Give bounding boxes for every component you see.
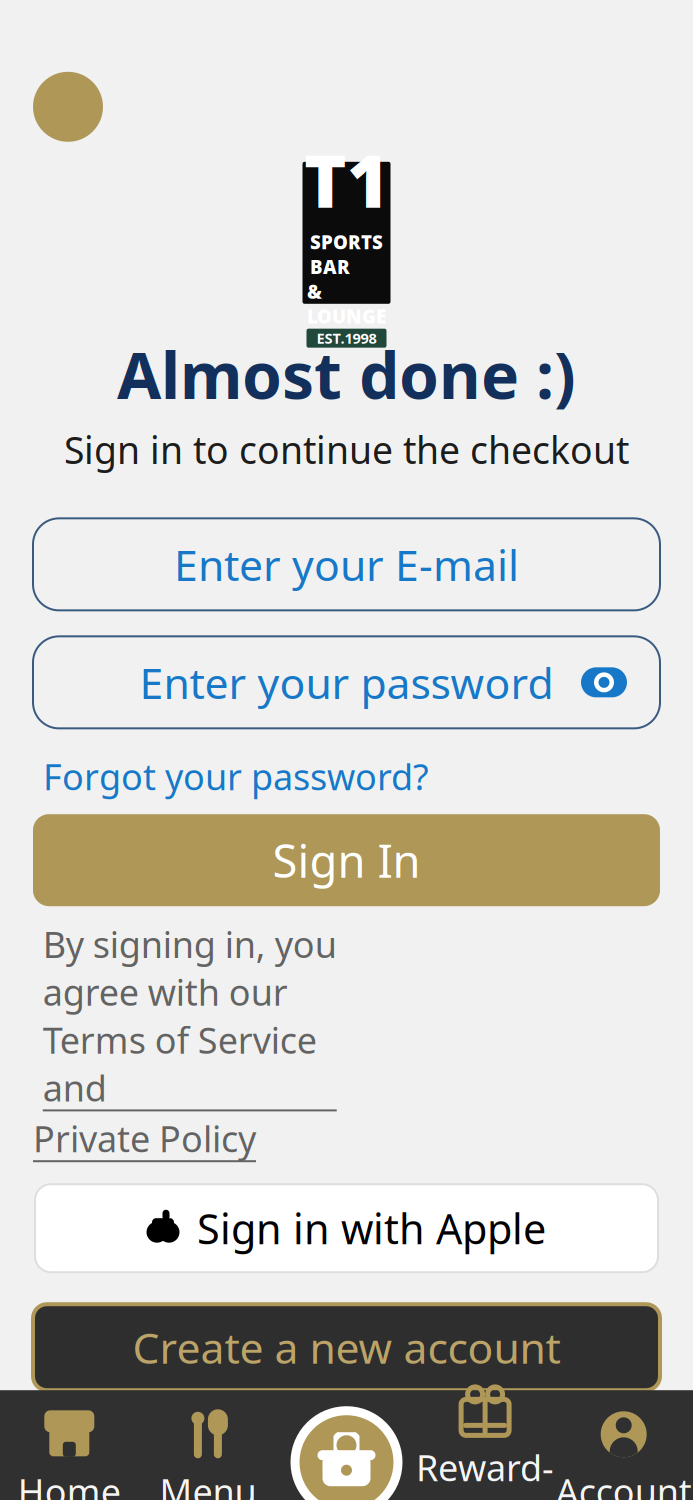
- staticText: Menu: [159, 1467, 256, 1500]
- button[interactable]: Create a new account: [33, 1304, 660, 1390]
- staticText: By signing in, you agree with our Terms …: [43, 920, 337, 1111]
- staticText: Create a new account: [132, 1319, 560, 1376]
- staticText: T1: [304, 132, 389, 227]
- staticText: EST.1998: [316, 328, 376, 348]
- button[interactable]: Sign In: [33, 814, 660, 906]
- staticText: Enter your password: [139, 654, 553, 711]
- button[interactable]: Menu: [139, 1407, 277, 1500]
- staticText: Private Policy: [33, 1114, 256, 1162]
- staticText: Enter your E-mail: [174, 536, 519, 593]
- button[interactable]: Forgot your password?: [43, 752, 429, 800]
- staticText: Account: [556, 1467, 692, 1500]
- staticText: Sign in with Apple: [197, 1201, 546, 1256]
- staticText: Home: [18, 1467, 121, 1500]
- button[interactable]: Cart: [277, 1407, 416, 1500]
- staticText: SPORTS BAR: [310, 229, 383, 279]
- staticText: Sign in to continue the checkout: [64, 425, 629, 474]
- button[interactable]: Rewards: [416, 1407, 554, 1500]
- button[interactable]: Sign in with Apple: [35, 1184, 658, 1272]
- staticText: Sign In: [272, 830, 420, 890]
- button[interactable]: Home: [0, 1407, 139, 1500]
- staticText: Rewards: [416, 1443, 554, 1500]
- staticText: & LOUNGE: [307, 279, 386, 329]
- button[interactable]: Enter your password: [33, 636, 660, 728]
- staticText: Forgot your password?: [43, 752, 429, 800]
- button[interactable]: Enter your E-mail: [33, 518, 660, 610]
- staticText: Almost done :): [117, 332, 576, 417]
- button[interactable]: Back: [33, 72, 103, 142]
- button[interactable]: By signing in, you agree with our Terms …: [33, 920, 346, 1162]
- button[interactable]: Account: [554, 1407, 693, 1500]
